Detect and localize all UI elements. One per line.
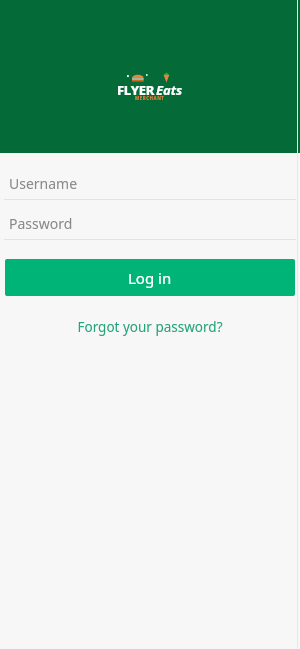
staticText: FLYER [117, 81, 155, 99]
button[interactable]: Password [0, 208, 300, 240]
staticText: MERCHANT [135, 95, 165, 101]
button[interactable]: Log in [5, 259, 295, 296]
staticText: Forgot your password? [77, 318, 223, 336]
staticText: Log in [128, 268, 172, 288]
staticText: Eats [156, 81, 183, 99]
staticText: Username [9, 174, 78, 193]
button[interactable]: Username [0, 168, 300, 200]
button[interactable]: Forgot your password? [0, 312, 300, 342]
staticText: Password [9, 214, 73, 233]
